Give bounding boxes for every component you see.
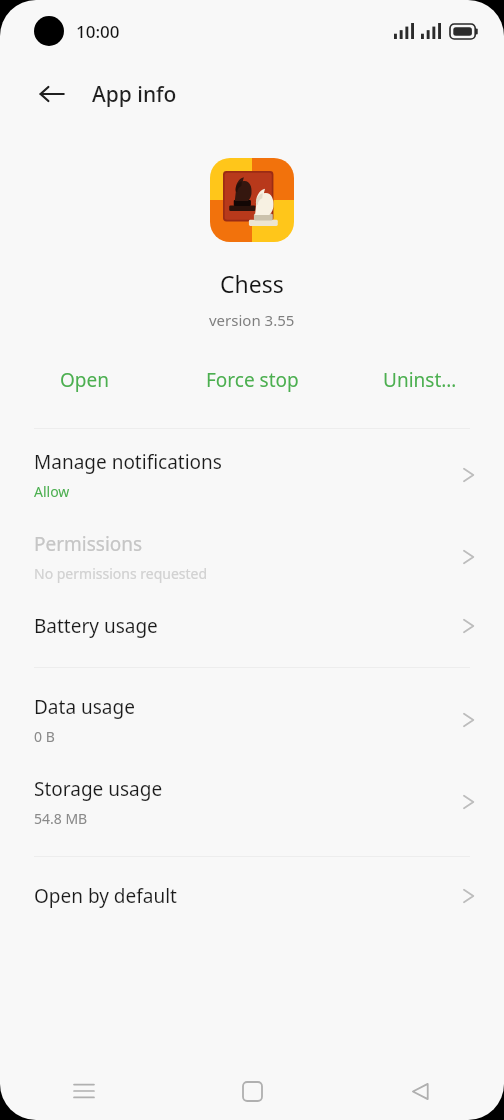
button[interactable]: Home	[168, 1062, 336, 1120]
staticText: Uninst…	[383, 367, 457, 393]
staticText: Manage notifications	[34, 449, 222, 475]
button[interactable]: Open by default	[0, 883, 504, 909]
button[interactable]: Uninst…	[336, 354, 504, 406]
button[interactable]: Permissions	[0, 531, 504, 583]
staticText: App info	[92, 80, 177, 109]
staticText: Open by default	[34, 883, 177, 909]
staticText: Storage usage	[34, 776, 163, 802]
staticText: 0 B	[34, 727, 55, 746]
button[interactable]: Battery usage	[0, 613, 504, 639]
button[interactable]: Manage notifications	[0, 449, 504, 501]
staticText: Open	[60, 367, 109, 393]
button[interactable]: Back	[336, 1062, 504, 1120]
staticText: Data usage	[34, 694, 135, 720]
staticText: Permissions	[34, 531, 143, 557]
staticText: 10:00	[76, 20, 120, 43]
button[interactable]: Data usage	[0, 694, 504, 746]
staticText: Battery usage	[34, 613, 158, 639]
button[interactable]: Open	[0, 354, 168, 406]
staticText: Force stop	[206, 367, 299, 393]
button[interactable]: Storage usage	[0, 776, 504, 828]
staticText: Allow	[34, 482, 70, 501]
staticText: No permissions requested	[34, 564, 208, 583]
button[interactable]: Back	[30, 72, 74, 116]
button[interactable]: Recent apps	[0, 1062, 168, 1120]
staticText: 54.8 MB	[34, 809, 88, 828]
button[interactable]: Force stop	[168, 354, 336, 406]
staticText: version 3.55	[209, 310, 295, 330]
staticText: Chess	[220, 268, 284, 299]
